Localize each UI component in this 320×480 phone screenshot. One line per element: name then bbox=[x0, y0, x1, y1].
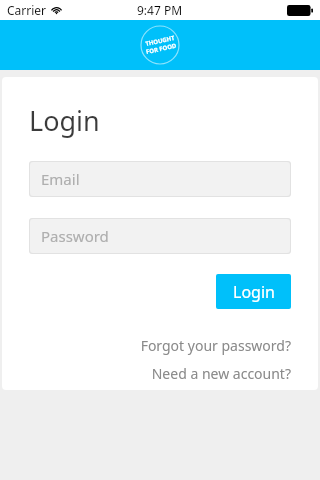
staticText: THOUGHT bbox=[145, 34, 176, 48]
staticText: Password bbox=[41, 226, 109, 246]
staticText: 9:47 PM bbox=[137, 2, 183, 18]
staticText: FOR FOOD bbox=[145, 42, 177, 56]
staticText: Forgot your password? bbox=[140, 336, 291, 355]
button[interactable]: Email bbox=[30, 162, 290, 196]
staticText: Login bbox=[233, 281, 275, 303]
button[interactable]: Login bbox=[216, 274, 291, 309]
button[interactable]: Password bbox=[30, 219, 290, 253]
staticText: Email bbox=[41, 169, 80, 189]
staticText: Need a new account? bbox=[151, 364, 291, 383]
staticText: Login bbox=[29, 102, 100, 139]
staticText: Carrier bbox=[7, 2, 47, 18]
button[interactable]: Forgot your password? bbox=[140, 336, 291, 355]
button[interactable]: Need a new account? bbox=[151, 364, 291, 383]
